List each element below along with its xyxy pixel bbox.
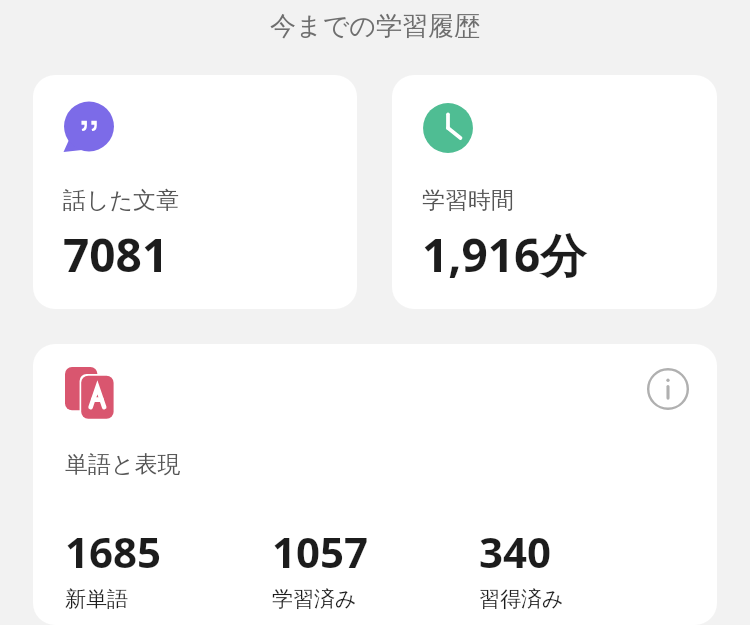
staticText: 1685: [65, 523, 162, 580]
button[interactable]: Information: [643, 364, 693, 414]
staticText: 習得済み: [479, 586, 564, 612]
button[interactable]: 話した文章: [33, 75, 357, 309]
button[interactable]: 学習時間: [392, 75, 717, 309]
staticText: 今までの学習履歴: [0, 10, 750, 43]
button[interactable]: 単語と表現: [33, 344, 717, 625]
staticText: 単語と表現: [65, 450, 181, 479]
staticText: 1057: [272, 523, 369, 580]
staticText: 1,916分: [422, 223, 587, 286]
staticText: 学習時間: [422, 186, 514, 215]
staticText: 7081: [63, 223, 169, 286]
staticText: 340: [479, 523, 552, 580]
staticText: 新単語: [65, 586, 128, 612]
staticText: 学習済み: [272, 586, 357, 612]
staticText: 話した文章: [63, 186, 180, 215]
